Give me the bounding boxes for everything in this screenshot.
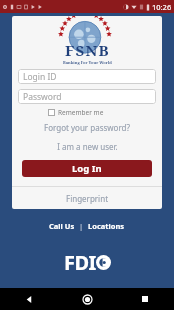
staticText: Login ID — [23, 71, 57, 83]
button[interactable]: Forgot your password? — [40, 121, 134, 134]
staticText: Password — [23, 91, 62, 103]
button[interactable]: Fingerprint — [12, 187, 162, 209]
staticText: I am a new user. — [57, 141, 118, 152]
button[interactable]: Login ID — [18, 69, 156, 84]
staticText: Log In — [72, 162, 102, 175]
button[interactable]: Recent apps — [116, 288, 174, 310]
staticText: Forgot your password? — [44, 122, 130, 133]
button[interactable]: Password — [18, 89, 156, 104]
staticText: Remember me — [58, 108, 104, 117]
staticText: Fingerprint — [66, 193, 109, 204]
other: FDIC — [64, 249, 111, 276]
button[interactable]: Remember me — [48, 108, 104, 117]
staticText: 10:26 — [152, 2, 172, 12]
button[interactable]: Locations — [86, 220, 127, 232]
staticText: FSNB — [65, 40, 110, 60]
button[interactable]: I am a new user. — [53, 140, 122, 153]
button[interactable]: Call Us — [47, 220, 77, 232]
staticText: Banking For Your World — [63, 60, 112, 65]
button[interactable]: Home — [58, 288, 116, 310]
staticText: | — [79, 221, 84, 231]
staticText: Call Us — [49, 221, 75, 231]
button[interactable]: Log In — [22, 160, 152, 177]
staticText: FDI — [64, 249, 96, 276]
staticText: Locations — [88, 221, 125, 231]
button[interactable]: Back — [0, 288, 58, 310]
